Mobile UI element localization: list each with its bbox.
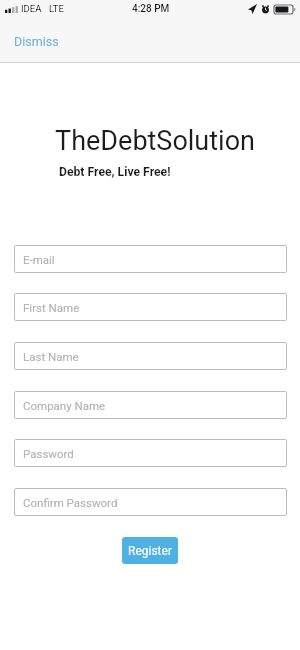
staticText: Last Name [23,350,79,363]
staticText: LTE [49,3,64,14]
button[interactable]: Dismiss [3,22,69,60]
other: Battery [273,4,296,14]
other: Location [248,4,257,14]
staticText: 4:28 PM [132,3,170,15]
staticText: Dismiss [14,34,59,49]
other: Alarm [261,4,270,14]
button[interactable]: E-mail [14,245,287,273]
staticText: First Name [23,301,80,314]
other: Signal strength [4,4,19,14]
staticText: Register [128,544,172,558]
button[interactable]: Register [122,537,178,564]
button[interactable]: Password [14,439,287,467]
button[interactable]: Last Name [14,342,287,370]
staticText: E-mail [23,253,55,266]
staticText: Password [23,447,74,460]
staticText: Company Name [23,399,106,412]
staticText: Confirm Password [23,496,118,509]
button[interactable]: Company Name [14,391,287,419]
button[interactable]: Confirm Password [14,488,287,516]
staticText: Debt Free, Live Free! [59,165,171,179]
staticText: TheDebtSolution [5,125,300,157]
button[interactable]: First Name [14,293,287,321]
staticText: IDEA [21,3,42,14]
